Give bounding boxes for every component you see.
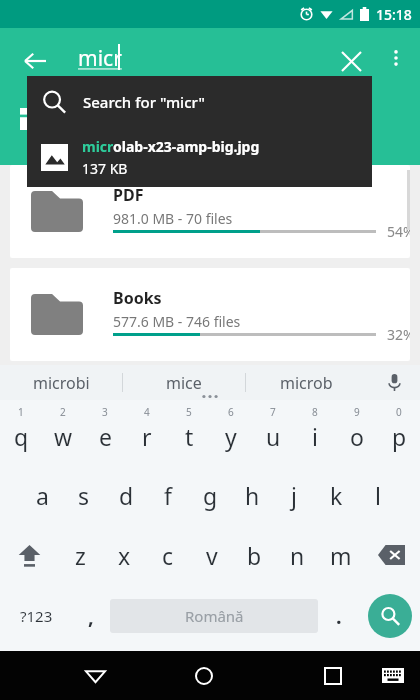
staticText: microb	[280, 372, 333, 394]
staticText: 7	[270, 405, 276, 419]
staticText: d	[119, 480, 134, 511]
staticText: a	[36, 480, 49, 511]
staticText: g	[203, 480, 218, 511]
staticText: microbi	[33, 372, 90, 394]
staticText: .	[336, 603, 342, 630]
button[interactable]: ,	[72, 585, 110, 647]
staticText: Search for "micr"	[83, 92, 205, 112]
button[interactable]: 3	[84, 400, 126, 465]
staticText: Română	[185, 606, 244, 626]
button[interactable]: 2	[42, 400, 84, 465]
button[interactable]: l	[357, 465, 399, 525]
staticText: n	[290, 540, 305, 571]
button[interactable]: d	[105, 465, 147, 525]
button[interactable]: microbi	[0, 365, 122, 400]
button[interactable]: s	[63, 465, 105, 525]
staticText: 32%	[387, 325, 410, 344]
staticText: h	[245, 480, 260, 511]
button[interactable]: v	[190, 525, 233, 585]
button[interactable]: 9	[336, 400, 378, 465]
staticText: u	[266, 421, 281, 452]
button[interactable]: m	[319, 525, 362, 585]
button[interactable]: 5	[168, 400, 210, 465]
button[interactable]: Back	[65, 651, 125, 700]
button[interactable]: 4	[126, 400, 168, 465]
button[interactable]: Recents	[305, 651, 360, 700]
staticText: 3	[102, 405, 108, 419]
staticText: y	[225, 421, 237, 452]
button[interactable]: h	[231, 465, 273, 525]
staticText: microlab-x23-amp-big.jpg	[82, 137, 260, 156]
button[interactable]: 8	[294, 400, 336, 465]
staticText: 15:18	[376, 5, 412, 24]
button[interactable]: Shift	[0, 525, 58, 585]
staticText: 0	[396, 405, 402, 419]
button[interactable]: Search	[360, 585, 420, 647]
staticText: 577.6 MB - 746 files	[113, 312, 241, 331]
button[interactable]: a	[21, 465, 63, 525]
button[interactable]: Română	[110, 599, 318, 633]
staticText: 6	[228, 405, 234, 419]
staticText: x	[118, 540, 131, 571]
staticText: micr	[78, 44, 122, 73]
button[interactable]: More options	[378, 40, 414, 76]
button[interactable]: j	[273, 465, 315, 525]
button[interactable]: microb	[245, 365, 368, 400]
button[interactable]: b	[233, 525, 276, 585]
button[interactable]: Books	[10, 268, 410, 361]
button[interactable]: .	[318, 585, 360, 647]
button[interactable]: PDF	[10, 165, 410, 258]
button[interactable]: z	[58, 525, 102, 585]
staticText: j	[291, 480, 297, 511]
staticText: q	[14, 421, 29, 452]
staticText: c	[162, 540, 174, 571]
staticText: r	[142, 421, 152, 452]
staticText: v	[206, 540, 218, 571]
button[interactable]: n	[276, 525, 319, 585]
staticText: 4	[144, 405, 150, 419]
staticText: 981.0 MB - 70 files	[113, 209, 233, 228]
button[interactable]: Voice input	[368, 365, 420, 400]
staticText: k	[330, 480, 343, 511]
staticText: 137 KB	[82, 159, 128, 178]
staticText: 1	[18, 405, 24, 419]
button[interactable]: x	[102, 525, 146, 585]
button[interactable]: ?123	[0, 585, 72, 647]
button[interactable]: mice	[122, 365, 245, 400]
staticText: o	[350, 421, 364, 452]
staticText: 8	[312, 405, 318, 419]
button[interactable]: microlab-x23-amp-big.jpg	[27, 128, 372, 187]
staticText: ?123	[20, 606, 53, 626]
staticText: mice	[166, 372, 202, 394]
button[interactable]: Back	[14, 40, 56, 82]
staticText: i	[312, 421, 318, 452]
staticText: z	[75, 540, 86, 571]
button[interactable]: Delete	[362, 525, 420, 585]
button[interactable]: c	[146, 525, 190, 585]
staticText: e	[99, 421, 112, 452]
button[interactable]: 6	[210, 400, 252, 465]
button[interactable]: Switch keyboard	[370, 651, 415, 700]
button[interactable]: k	[315, 465, 357, 525]
staticText: m	[330, 540, 352, 571]
button[interactable]: 7	[252, 400, 294, 465]
staticText: 2	[60, 405, 66, 419]
staticText: ,	[88, 603, 94, 630]
button[interactable]: 0	[378, 400, 420, 465]
staticText: Books	[113, 287, 162, 309]
staticText: 9	[354, 405, 360, 419]
staticText: f	[164, 480, 172, 511]
staticText: 54%	[387, 222, 410, 241]
button[interactable]: Home	[174, 651, 234, 700]
staticText: s	[78, 480, 90, 511]
staticText: w	[54, 421, 73, 452]
button[interactable]: 1	[0, 400, 42, 465]
staticText: t	[185, 421, 194, 452]
staticText: PDF	[113, 184, 144, 206]
button[interactable]: f	[147, 465, 189, 525]
button[interactable]: g	[189, 465, 231, 525]
button[interactable]: Clear search	[330, 40, 372, 82]
staticText: p	[392, 421, 407, 452]
staticText: b	[247, 540, 262, 571]
button[interactable]: Search for "micr"	[27, 76, 372, 128]
